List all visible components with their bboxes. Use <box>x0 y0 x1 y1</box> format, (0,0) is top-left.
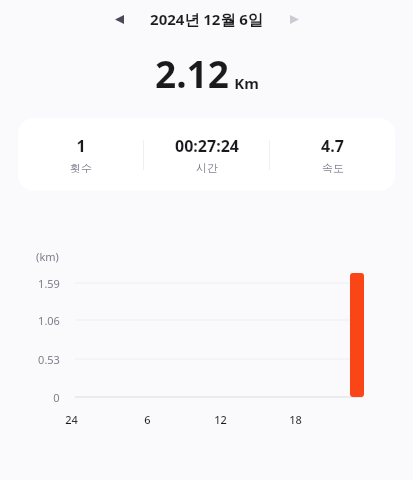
staticText: 6 <box>144 412 151 427</box>
staticText: Km <box>234 73 259 93</box>
staticText: 24 <box>65 412 78 427</box>
staticText: 1 <box>76 135 86 157</box>
button[interactable]: 1 <box>18 118 395 191</box>
staticText: 0 <box>53 390 60 405</box>
staticText: 00:27:24 <box>175 135 239 157</box>
staticText: 2024년 12월 6일 <box>150 9 263 29</box>
staticText: 2.12 <box>155 48 229 98</box>
staticText: 횟수 <box>70 161 92 175</box>
staticText: 시간 <box>196 161 218 175</box>
staticText: 1.06 <box>38 313 60 328</box>
button[interactable]: Previous day <box>106 6 132 32</box>
staticText: 4.7 <box>321 135 344 157</box>
button[interactable]: Next day <box>281 6 307 32</box>
staticText: 18 <box>289 412 302 427</box>
staticText: 1.59 <box>38 276 60 291</box>
staticText: 속도 <box>322 161 344 175</box>
staticText: 12 <box>214 412 227 427</box>
staticText: 0.53 <box>38 352 60 367</box>
staticText: (km) <box>36 249 59 264</box>
